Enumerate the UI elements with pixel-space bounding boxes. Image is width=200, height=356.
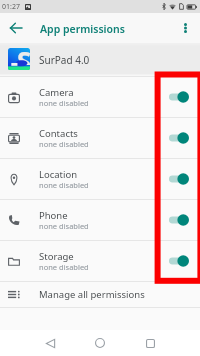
staticText: Manage all permissions (39, 288, 145, 301)
staticText: Storage (39, 250, 74, 263)
button[interactable]: Contacts (0, 118, 200, 158)
staticText: S (17, 48, 30, 65)
button[interactable]: Navigate up (8, 20, 24, 36)
staticText: App permissions (40, 22, 125, 36)
button[interactable]: Permission toggle (169, 90, 189, 104)
staticText: none disabled (39, 262, 89, 272)
button[interactable]: Recent apps (137, 330, 164, 356)
button[interactable]: Permission toggle (169, 213, 189, 227)
staticText: none disabled (39, 221, 89, 231)
staticText: none disabled (39, 139, 89, 149)
staticText: SurPad 4.0 (39, 53, 90, 67)
staticText: Camera (39, 86, 74, 99)
button[interactable]: Back (37, 330, 64, 356)
button[interactable]: Home (86, 330, 113, 356)
staticText: none disabled (39, 180, 89, 190)
button[interactable]: Camera (0, 77, 200, 117)
staticText: Phone (39, 209, 68, 222)
button[interactable]: Location (0, 159, 200, 199)
button[interactable]: Permission toggle (169, 172, 189, 186)
button[interactable]: Storage (0, 241, 200, 281)
button[interactable]: More options (177, 20, 193, 36)
button[interactable]: Manage all permissions (0, 282, 200, 307)
staticText: Location (39, 168, 78, 181)
staticText: none disabled (39, 98, 89, 108)
staticText: 01:27 (2, 2, 20, 12)
button[interactable]: Permission toggle (169, 254, 189, 268)
button[interactable]: Phone (0, 200, 200, 240)
button[interactable]: Permission toggle (169, 131, 189, 145)
staticText: Contacts (39, 127, 78, 140)
